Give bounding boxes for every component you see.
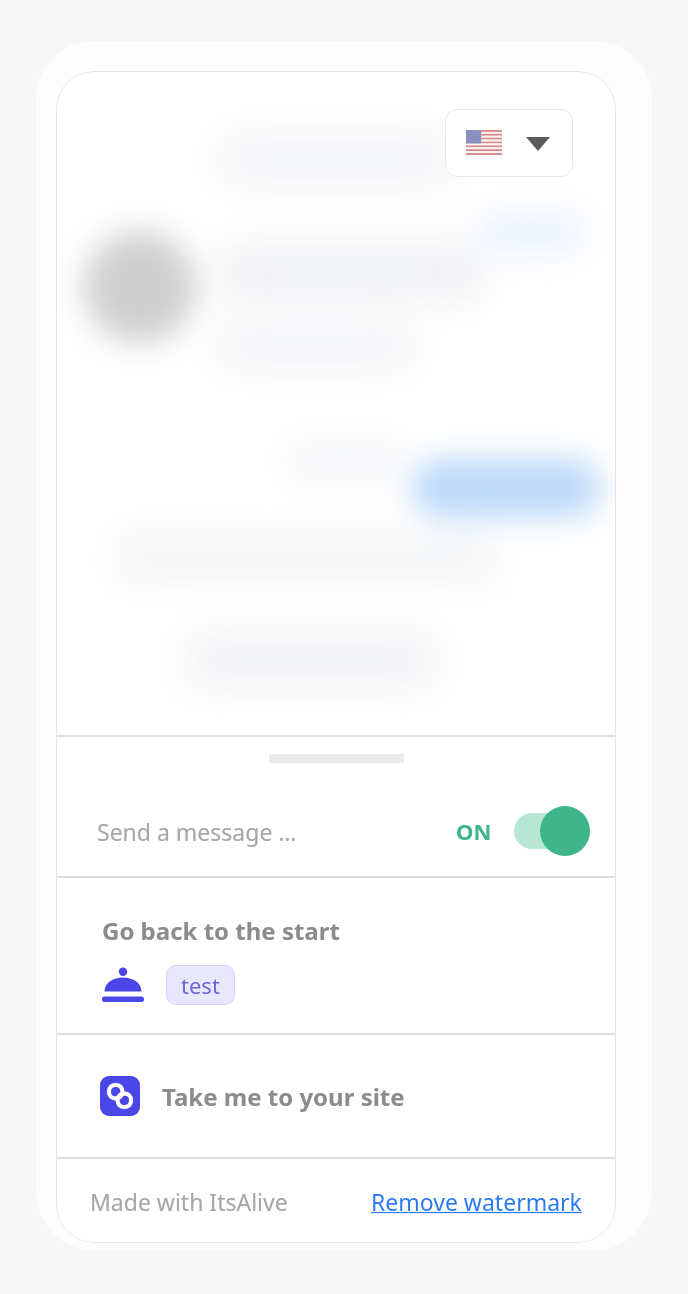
button[interactable]: Take me to your site: [56, 1035, 616, 1157]
button[interactable]: Select language: [445, 109, 573, 177]
staticText: ON: [456, 816, 492, 846]
staticText: Take me to your site: [162, 1080, 405, 1113]
staticText: Send a message …: [97, 816, 297, 847]
staticText: Remove watermark: [371, 1186, 582, 1217]
staticText: test: [181, 970, 220, 1000]
button[interactable]: Go back to the start: [56, 878, 616, 1033]
staticText: Made with ItsAlive: [90, 1186, 288, 1217]
staticText: Go back to the start: [102, 914, 340, 947]
button[interactable]: Remove watermark: [371, 1186, 582, 1217]
button[interactable]: test: [166, 965, 235, 1005]
button[interactable]: Toggle bot on: [514, 806, 590, 856]
button[interactable]: Send a message …: [56, 786, 616, 876]
